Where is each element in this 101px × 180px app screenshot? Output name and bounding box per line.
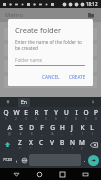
staticText: Enter the name of the folder to be creat… xyxy=(15,39,88,51)
button[interactable]: Q xyxy=(0,107,11,122)
staticText: 18:12 xyxy=(86,1,98,7)
button[interactable]: . xyxy=(82,154,88,166)
button[interactable]: Enter xyxy=(88,155,99,166)
staticText: CANCEL xyxy=(42,74,60,80)
staticText: $ xyxy=(31,132,33,136)
button[interactable]: A xyxy=(4,122,15,137)
staticText: 6 xyxy=(55,117,57,121)
button[interactable]: , xyxy=(14,154,20,166)
button[interactable]: I xyxy=(71,107,81,122)
staticText: ?123 xyxy=(3,157,13,163)
staticText: L xyxy=(90,123,94,132)
staticText: F xyxy=(40,123,44,132)
button[interactable]: Home xyxy=(32,168,46,180)
staticText: S xyxy=(19,123,23,132)
button[interactable]: Keyboard xyxy=(78,168,92,180)
staticText: I xyxy=(75,108,78,117)
button[interactable]: C xyxy=(36,137,47,152)
button[interactable]: H xyxy=(57,122,67,137)
button[interactable]: Suggestions xyxy=(4,98,12,106)
staticText: J xyxy=(71,123,73,132)
staticText: Q xyxy=(3,108,9,117)
staticText: @ xyxy=(8,132,11,136)
staticText: A xyxy=(7,123,12,132)
staticText: C xyxy=(39,138,44,147)
button[interactable]: ?123 xyxy=(2,154,14,166)
staticText: En xyxy=(21,99,27,106)
staticText: 3 xyxy=(25,117,27,121)
staticText: H xyxy=(60,123,65,132)
button[interactable]: N xyxy=(67,137,77,152)
button[interactable]: T xyxy=(41,107,51,122)
button[interactable]: L xyxy=(87,122,97,137)
staticText: CREATE xyxy=(69,74,86,80)
staticText: 5 xyxy=(45,117,47,121)
staticText: 9 xyxy=(85,117,87,121)
button[interactable]: Shift xyxy=(1,137,14,152)
button[interactable]: Back xyxy=(9,168,23,180)
staticText: 0 xyxy=(95,117,97,121)
button[interactable]: F xyxy=(37,122,47,137)
staticText: V xyxy=(50,138,54,147)
button[interactable]: R xyxy=(31,107,41,122)
button[interactable]: En xyxy=(18,98,30,107)
staticText: Y xyxy=(54,108,58,117)
staticText: Z xyxy=(18,138,22,147)
staticText: 4 xyxy=(35,117,37,121)
staticText: & xyxy=(51,132,54,136)
staticText: : xyxy=(52,147,53,151)
button[interactable]: S xyxy=(15,122,26,137)
staticText: ' xyxy=(41,147,42,151)
staticText: E xyxy=(24,108,28,117)
button[interactable]: CANCEL xyxy=(40,72,62,82)
button[interactable]: D xyxy=(26,122,37,137)
button[interactable]: Hide keyboard xyxy=(89,98,97,106)
staticText: M xyxy=(79,138,85,147)
button[interactable]: U xyxy=(61,107,71,122)
staticText: 2 xyxy=(15,117,17,121)
button[interactable]: CREATE xyxy=(67,72,88,82)
staticText: ) xyxy=(92,132,93,136)
staticText: T xyxy=(44,108,48,117)
staticText: # xyxy=(19,132,22,136)
button[interactable]: M xyxy=(77,137,87,152)
button[interactable]: New folder xyxy=(86,10,96,20)
staticText: D xyxy=(29,123,34,132)
staticText: W xyxy=(13,108,20,117)
staticText: 1 xyxy=(5,117,7,121)
button[interactable]: Recents xyxy=(55,168,69,180)
button[interactable]: J xyxy=(67,122,77,137)
button[interactable]: W xyxy=(11,107,21,122)
button[interactable]: X xyxy=(25,137,36,152)
button[interactable]: Change language xyxy=(20,154,28,166)
staticText: ( xyxy=(82,132,83,136)
staticText: ; xyxy=(62,147,63,151)
staticText: 7 xyxy=(65,117,67,121)
staticText: K xyxy=(80,123,85,132)
button[interactable]: G xyxy=(47,122,57,137)
button[interactable]: Z xyxy=(14,137,25,152)
staticText: Create folder xyxy=(15,25,62,35)
staticText: R xyxy=(34,108,39,117)
staticText: - xyxy=(61,132,63,136)
staticText: _ xyxy=(41,132,43,136)
staticText: Folder name xyxy=(15,57,43,63)
staticText: + xyxy=(71,132,73,136)
staticText: . xyxy=(84,157,86,164)
button[interactable]: E xyxy=(21,107,31,122)
button[interactable]: K xyxy=(77,122,87,137)
button[interactable]: V xyxy=(47,137,57,152)
staticText: P xyxy=(94,108,98,117)
button[interactable]: Y xyxy=(51,107,61,122)
button[interactable]: Backspace xyxy=(87,137,100,152)
button[interactable]: P xyxy=(91,107,101,122)
staticText: ? xyxy=(81,147,83,151)
button[interactable]: O xyxy=(81,107,91,122)
button[interactable]: B xyxy=(57,137,67,152)
button[interactable]: Folder name xyxy=(15,57,85,66)
staticText: G xyxy=(50,123,55,132)
staticText: ! xyxy=(72,147,73,151)
staticText: Memo xyxy=(5,11,24,19)
staticText: X xyxy=(29,138,33,147)
